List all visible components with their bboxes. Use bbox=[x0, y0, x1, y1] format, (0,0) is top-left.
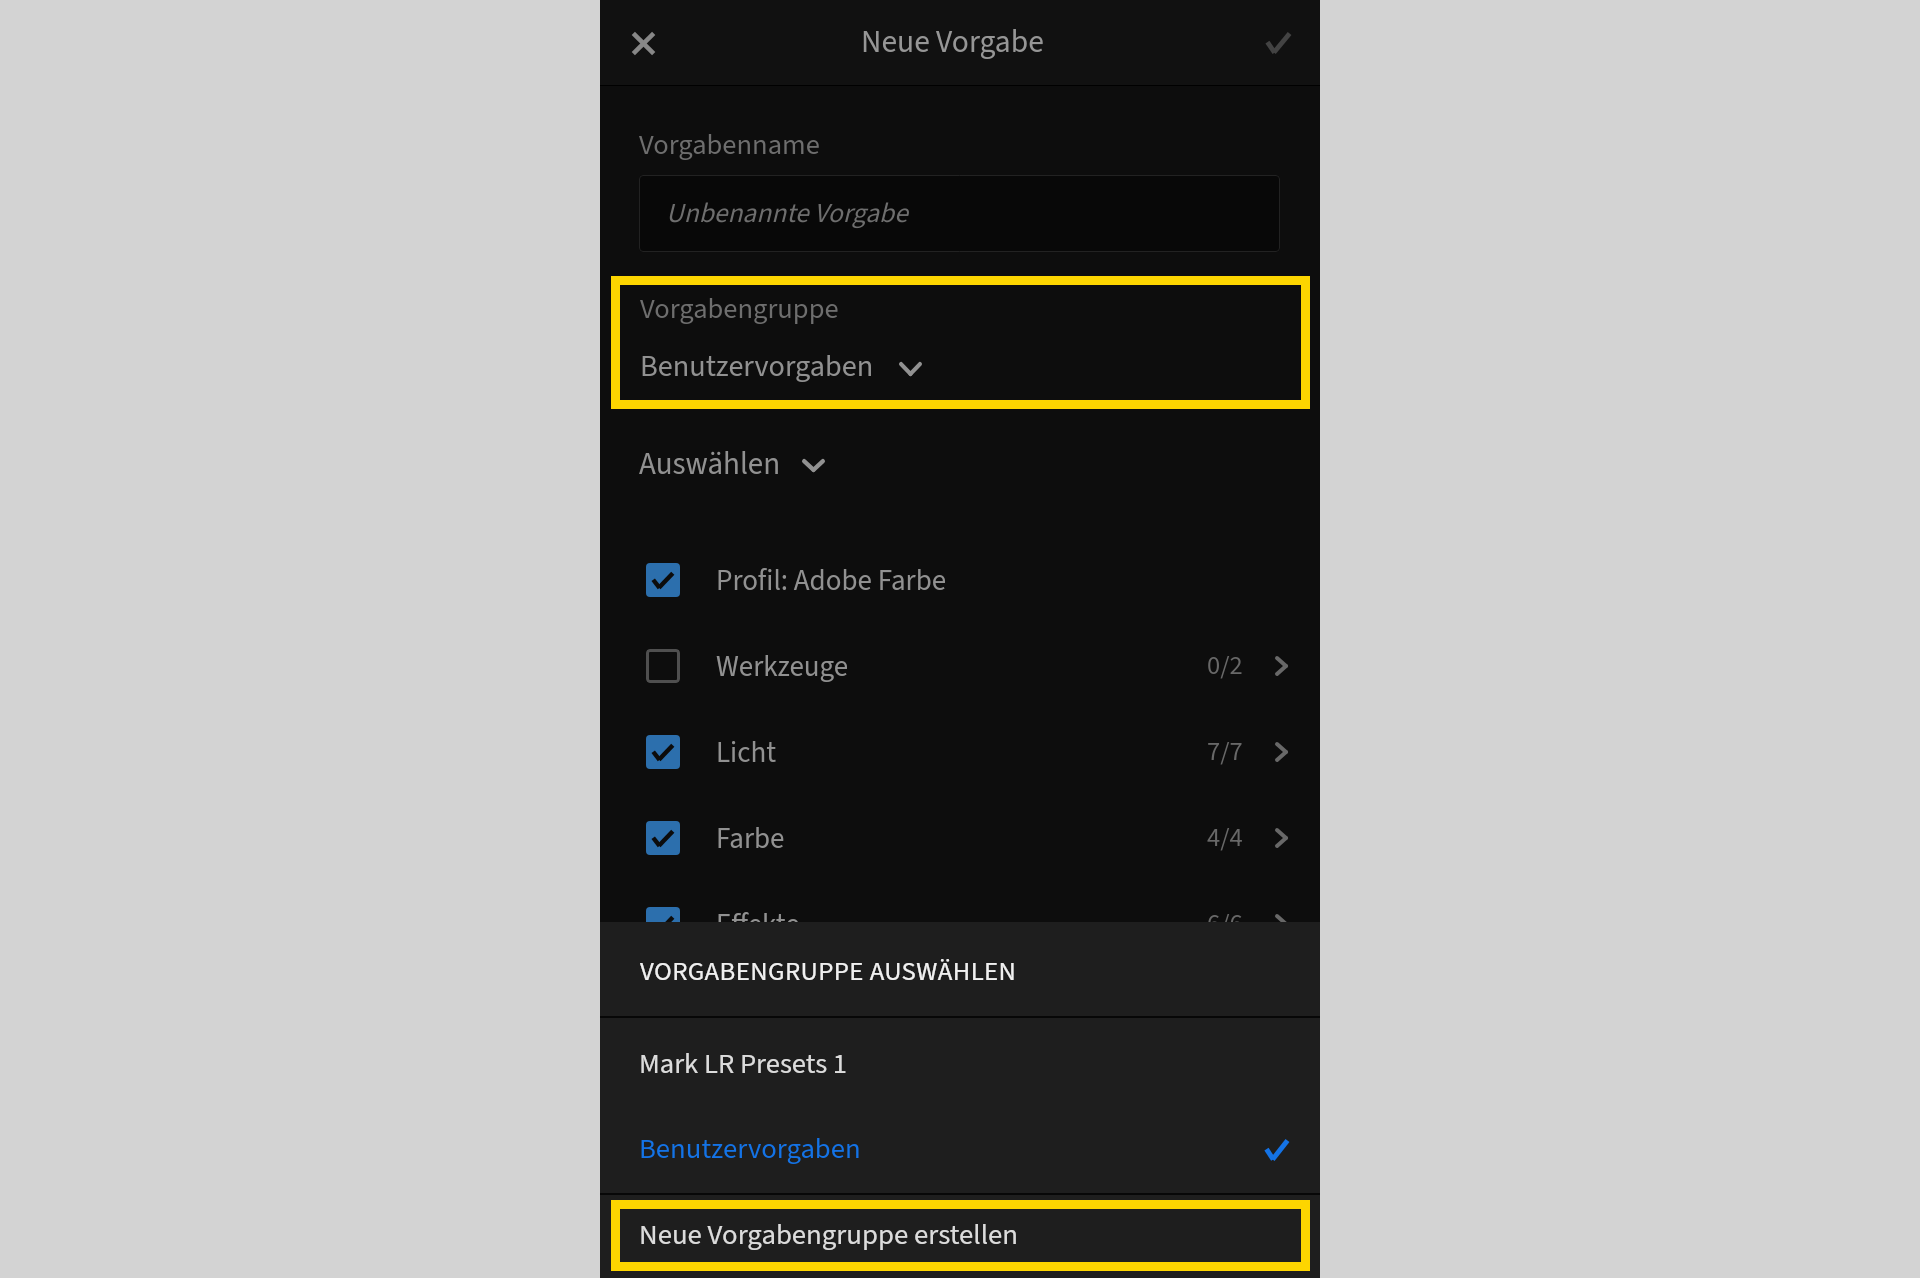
button[interactable]: Auswählen bbox=[639, 442, 825, 486]
button[interactable]: Vorgabengruppe bbox=[611, 276, 1310, 409]
staticText: Effekte bbox=[716, 904, 800, 945]
staticText: 6/6 bbox=[1207, 905, 1243, 943]
button[interactable]: Effekte bbox=[600, 881, 1320, 967]
staticText: Auswählen bbox=[639, 442, 781, 486]
staticText: Licht bbox=[716, 732, 777, 773]
staticText: 7/7 bbox=[1207, 733, 1243, 771]
button[interactable]: Profil: Adobe Farbe bbox=[600, 537, 1320, 623]
staticText: VORGABENGRUPPE AUSWÄHLEN bbox=[640, 953, 1017, 991]
button[interactable]: Mark LR Presets 1 bbox=[600, 1018, 1320, 1106]
button[interactable]: Unbenannte Vorgabe bbox=[639, 175, 1280, 252]
staticText: 4/4 bbox=[1207, 819, 1243, 857]
button[interactable]: Werkzeuge bbox=[600, 623, 1320, 709]
staticText: Vorgabenname bbox=[639, 125, 820, 166]
button[interactable]: Neue Vorgabengruppe erstellen bbox=[611, 1200, 1310, 1271]
staticText: Neue Vorgabe bbox=[861, 20, 1044, 65]
staticText: Profil: Adobe Farbe bbox=[716, 560, 947, 601]
button[interactable]: Save bbox=[1250, 15, 1306, 71]
button[interactable]: Licht bbox=[600, 709, 1320, 795]
button[interactable]: Benutzervorgaben bbox=[600, 1106, 1320, 1193]
button[interactable]: Farbe bbox=[600, 795, 1320, 881]
staticText: Mark LR Presets 1 bbox=[639, 1044, 848, 1085]
staticText: Benutzervorgaben bbox=[640, 345, 874, 388]
button[interactable]: Close bbox=[615, 15, 671, 71]
staticText: Farbe bbox=[716, 818, 785, 859]
staticText: Vorgabengruppe bbox=[640, 289, 839, 330]
staticText: 0/2 bbox=[1207, 647, 1243, 685]
staticText: Werkzeuge bbox=[716, 646, 849, 687]
staticText: Neue Vorgabengruppe erstellen bbox=[639, 1215, 1019, 1256]
staticText: Unbenannte Vorgabe bbox=[666, 194, 908, 233]
staticText: Benutzervorgaben bbox=[639, 1129, 861, 1170]
